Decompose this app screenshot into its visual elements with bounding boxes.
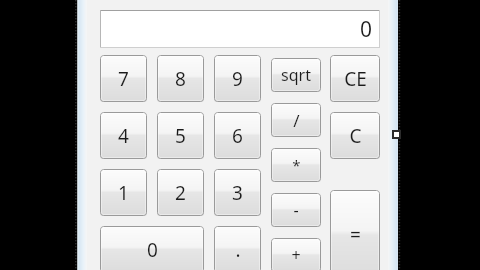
button[interactable]: 3 bbox=[214, 169, 261, 216]
staticText: 7 bbox=[118, 66, 129, 92]
staticText: 5 bbox=[175, 123, 186, 149]
button[interactable]: = bbox=[330, 190, 380, 270]
button[interactable]: 4 bbox=[100, 112, 147, 159]
button[interactable]: C bbox=[330, 112, 380, 159]
staticText: 6 bbox=[232, 123, 243, 149]
staticText: - bbox=[293, 199, 299, 221]
staticText: CE bbox=[344, 66, 367, 92]
staticText: 9 bbox=[232, 66, 243, 92]
staticText: 0 bbox=[359, 15, 372, 44]
button[interactable]: . bbox=[214, 226, 261, 270]
button[interactable]: 0 bbox=[100, 10, 380, 48]
button[interactable]: 9 bbox=[214, 55, 261, 102]
button[interactable]: CE bbox=[330, 55, 380, 102]
staticText: / bbox=[293, 109, 300, 132]
staticText: 8 bbox=[175, 66, 186, 92]
staticText: * bbox=[292, 155, 301, 175]
button[interactable]: / bbox=[271, 103, 321, 137]
button[interactable]: Resize window bbox=[392, 130, 401, 139]
staticText: 1 bbox=[118, 180, 129, 206]
staticText: sqrt bbox=[281, 64, 311, 86]
button[interactable]: * bbox=[271, 148, 321, 182]
button[interactable]: 7 bbox=[100, 55, 147, 102]
button[interactable]: + bbox=[271, 238, 321, 270]
button[interactable]: 2 bbox=[157, 169, 204, 216]
button[interactable]: 6 bbox=[214, 112, 261, 159]
button[interactable]: 0 bbox=[100, 226, 204, 270]
staticText: 4 bbox=[118, 123, 129, 149]
staticText: 2 bbox=[175, 180, 186, 206]
staticText: 0 bbox=[147, 237, 158, 263]
staticText: 3 bbox=[232, 180, 243, 206]
staticText: = bbox=[350, 222, 361, 248]
button[interactable]: sqrt bbox=[271, 58, 321, 92]
staticText: C bbox=[349, 123, 362, 149]
button[interactable]: 8 bbox=[157, 55, 204, 102]
button[interactable]: 5 bbox=[157, 112, 204, 159]
button[interactable]: 1 bbox=[100, 169, 147, 216]
staticText: . bbox=[235, 237, 241, 263]
staticText: + bbox=[291, 244, 301, 266]
button[interactable]: - bbox=[271, 193, 321, 227]
